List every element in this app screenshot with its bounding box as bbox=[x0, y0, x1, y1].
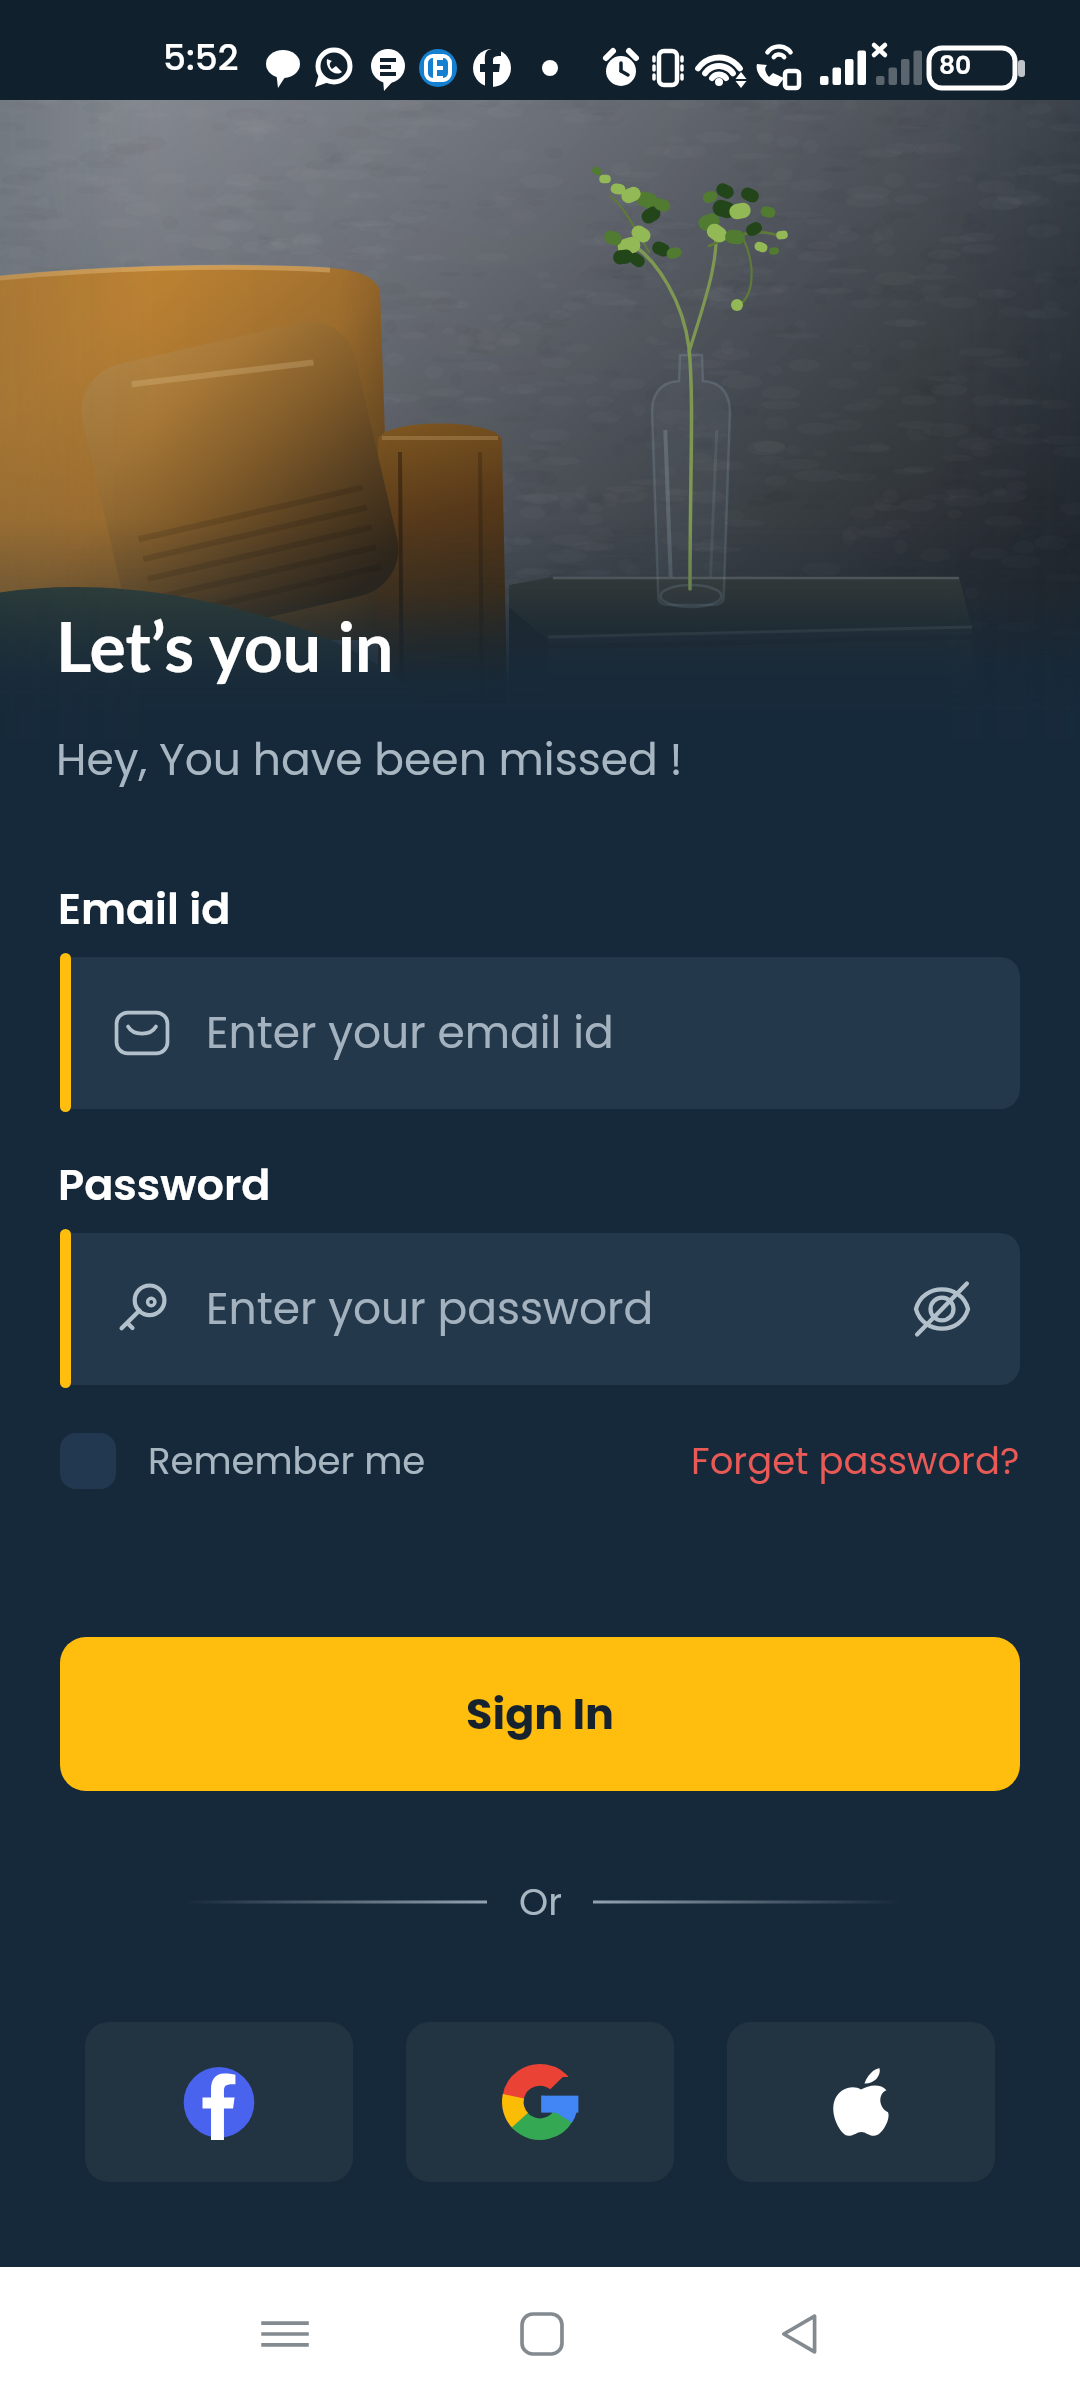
staticText: Sign In bbox=[466, 1684, 615, 1744]
button[interactable]: Home bbox=[492, 2284, 592, 2384]
button[interactable]: Recent apps bbox=[235, 2284, 335, 2384]
staticText: Email id bbox=[58, 879, 231, 939]
staticText: Password bbox=[58, 1155, 271, 1215]
staticText: Remember me bbox=[148, 1435, 426, 1487]
button[interactable]: Back bbox=[750, 2284, 850, 2384]
button[interactable]: Show password bbox=[904, 1271, 980, 1347]
staticText: 80 bbox=[939, 48, 972, 83]
button[interactable]: Forget password? bbox=[691, 1425, 1020, 1497]
button[interactable]: Sign in with Google bbox=[406, 2022, 674, 2182]
button[interactable]: Enter your password bbox=[71, 1233, 1020, 1385]
staticText: Enter your email id bbox=[206, 1002, 614, 1064]
staticText: Enter your password bbox=[206, 1278, 654, 1340]
staticText: Or bbox=[519, 1876, 562, 1928]
button[interactable]: Sign in with Facebook bbox=[85, 2022, 353, 2182]
button[interactable]: Remember me bbox=[60, 1425, 426, 1497]
staticText: Forget password? bbox=[691, 1435, 1020, 1487]
staticText: Hey, You have been missed ! bbox=[56, 729, 683, 791]
button[interactable]: Sign In bbox=[60, 1637, 1020, 1791]
staticText: 5:52 bbox=[163, 32, 239, 82]
staticText: Let’s you in bbox=[56, 605, 394, 687]
button[interactable]: Sign in with Apple bbox=[727, 2022, 995, 2182]
button[interactable]: Enter your email id bbox=[71, 957, 1020, 1109]
